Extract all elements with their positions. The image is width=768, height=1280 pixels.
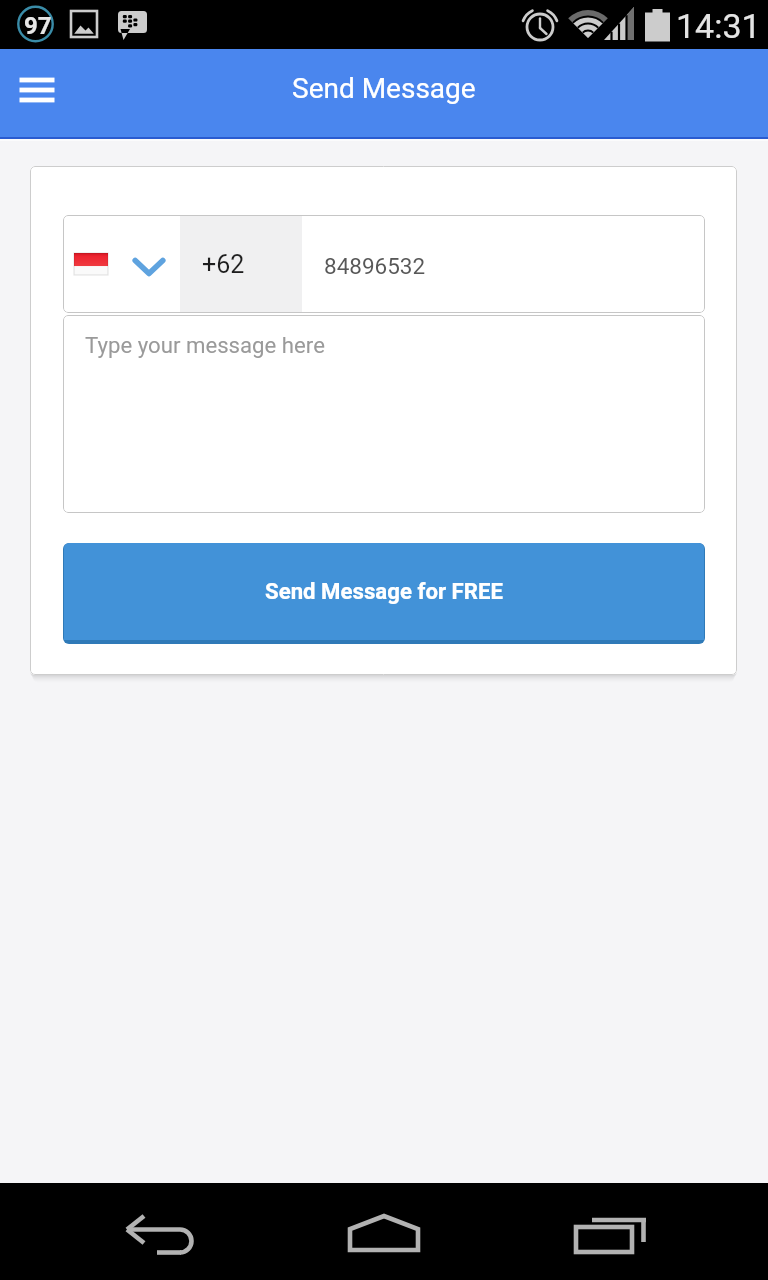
staticText: Send Message <box>292 72 476 105</box>
button[interactable]: Send Message for FREE <box>63 543 705 644</box>
staticText: 84896532 <box>324 253 426 279</box>
staticText: Type your message here <box>85 332 325 358</box>
staticText: +62 <box>202 250 245 279</box>
button[interactable]: Home <box>256 1183 512 1280</box>
staticText: 14:31 <box>676 6 761 46</box>
button[interactable]: 84896532 <box>302 215 703 313</box>
button[interactable]: Select country <box>63 215 180 313</box>
button[interactable]: +62 <box>180 215 302 313</box>
button[interactable]: Type your message here <box>63 315 705 513</box>
staticText: 97 <box>24 12 52 40</box>
button[interactable]: Recent apps <box>512 1183 768 1280</box>
staticText: Send Message for FREE <box>265 578 503 604</box>
button[interactable]: Back <box>0 1183 256 1280</box>
button[interactable]: Open navigation menu <box>9 66 65 122</box>
